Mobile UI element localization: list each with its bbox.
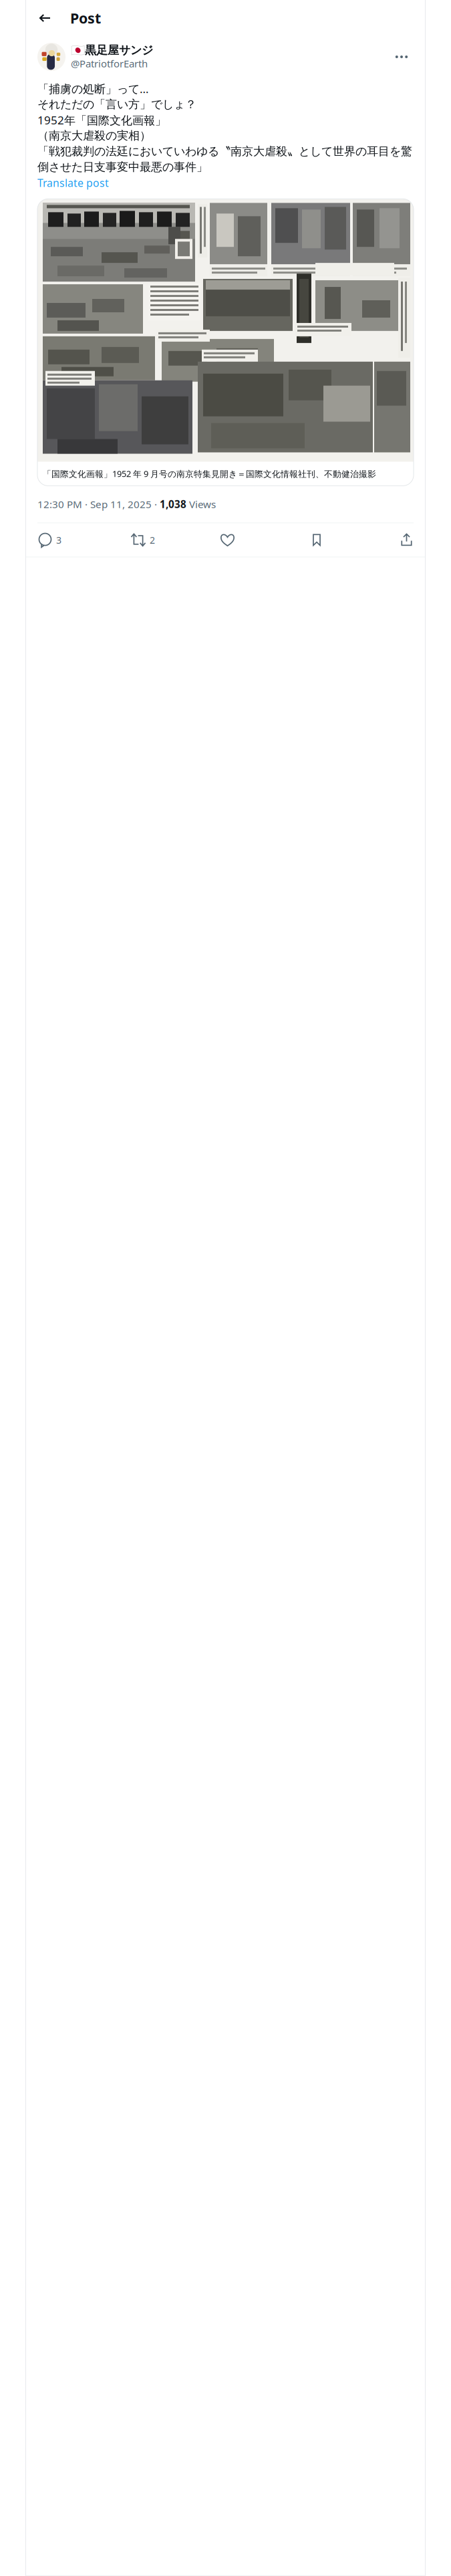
button[interactable]: Like [220,529,311,551]
staticText: （南京大虐殺の実相） [37,129,151,143]
staticText: Post [70,8,101,28]
button[interactable]: 3 [38,529,131,551]
staticText: 「戦犯裁判の法廷においていわゆる〝南京大虐殺〟として世界の耳目を驚 [37,144,412,159]
button[interactable]: 2 [131,529,220,551]
staticText: Translate post [37,176,109,190]
staticText: 2 [150,534,155,546]
button[interactable]: Post image [26,199,425,486]
staticText: @PatriotforEarth [71,57,148,70]
staticText: それただの「言い方」でしょ？ [37,97,196,112]
staticText: 「国際文化画報」1952 年 9 月号の南京特集見開き＝国際文化情報社刊、不動健… [43,468,376,480]
staticText: 1952年「国際文化画報」 [37,112,166,128]
button[interactable]: Back [33,6,57,30]
staticText: 1,038 [160,497,186,511]
button[interactable]: Share [400,529,416,551]
button[interactable]: More [390,45,414,69]
staticText: Views [186,497,216,511]
staticText: 3 [56,534,61,546]
staticText: 倒させた日支事変中最悪の事件」 [37,160,208,174]
button[interactable]: Post [57,8,101,28]
staticText: 🇯🇵黒足屋サンジ [71,43,153,57]
staticText: 12:30 PM · Sep 11, 2025 · [37,497,160,511]
button[interactable]: Translate post [37,176,109,190]
button[interactable]: Bookmark [311,529,400,551]
staticText: 「捕虜の処断」って… [37,81,149,96]
button[interactable]: Profile picture [37,43,65,71]
